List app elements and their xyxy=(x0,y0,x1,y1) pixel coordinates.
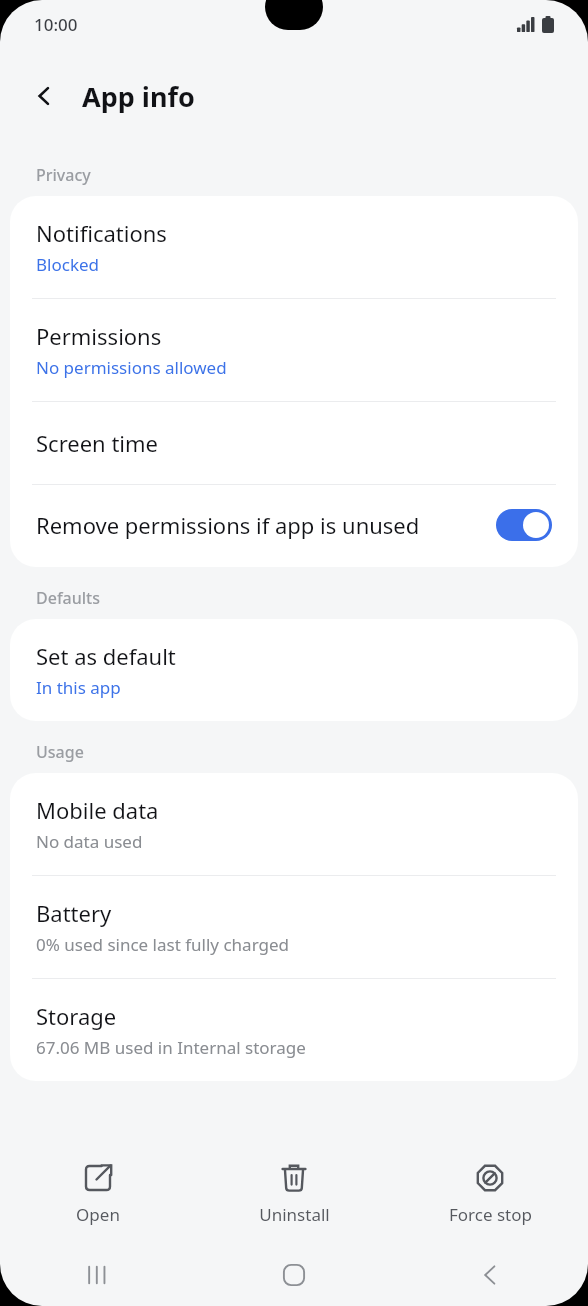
button[interactable]: Back xyxy=(20,72,68,120)
staticText: 0% used since last fully charged xyxy=(36,933,289,956)
button[interactable]: Uninstall xyxy=(196,1144,392,1244)
staticText: Storage xyxy=(36,1001,117,1031)
staticText: Screen time xyxy=(36,428,159,458)
staticText: Mobile data xyxy=(36,795,159,825)
staticText: Remove permissions if app is unused xyxy=(36,510,496,540)
staticText: 10:00 xyxy=(34,13,78,36)
button[interactable]: Permissions xyxy=(10,299,578,401)
button[interactable]: Back xyxy=(392,1244,588,1306)
button[interactable]: Force stop xyxy=(392,1144,588,1244)
staticText: Defaults xyxy=(36,587,101,609)
staticText: Uninstall xyxy=(259,1203,330,1226)
staticText: Notifications xyxy=(36,218,167,248)
staticText: App info xyxy=(82,78,195,115)
button[interactable]: Remove permissions toggle xyxy=(496,509,552,541)
button[interactable]: Screen time xyxy=(10,402,578,484)
button[interactable]: Home xyxy=(196,1244,392,1306)
button[interactable]: Set as default xyxy=(10,619,578,721)
staticText: Permissions xyxy=(36,321,162,351)
staticText: Privacy xyxy=(36,164,91,186)
staticText: Force stop xyxy=(449,1203,532,1226)
staticText: Blocked xyxy=(36,253,100,276)
staticText: 67.06 MB used in Internal storage xyxy=(36,1036,306,1059)
staticText: Set as default xyxy=(36,641,176,671)
staticText: Open xyxy=(76,1203,120,1226)
button[interactable]: Open xyxy=(0,1144,196,1244)
staticText: Usage xyxy=(36,741,84,763)
staticText: Battery xyxy=(36,898,112,928)
staticText: In this app xyxy=(36,676,121,699)
button[interactable]: Mobile data xyxy=(10,773,578,875)
button[interactable]: Remove permissions if app is unused xyxy=(10,485,578,567)
button[interactable]: Battery xyxy=(10,876,578,978)
staticText: No permissions allowed xyxy=(36,356,227,379)
button[interactable]: Storage xyxy=(10,979,578,1081)
button[interactable]: Recents xyxy=(0,1244,196,1306)
button[interactable]: Notifications xyxy=(10,196,578,298)
staticText: No data used xyxy=(36,830,143,853)
